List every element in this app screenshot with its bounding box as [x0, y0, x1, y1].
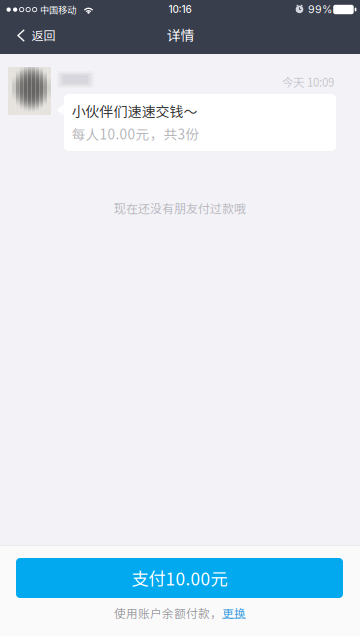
staticText: 现在还没有朋友付过款哦: [114, 199, 246, 217]
staticText: 更换: [222, 605, 246, 621]
staticText: 返回: [31, 26, 55, 44]
staticText: 今天 10:09: [282, 73, 334, 90]
staticText: 使用账户余额付款，: [114, 605, 222, 621]
button[interactable]: 返回: [10, 20, 78, 54]
staticText: 详情: [166, 24, 194, 45]
staticText: 每人10.00元，共3份: [71, 124, 199, 143]
staticText: 中国移动: [40, 3, 76, 16]
staticText: 小伙伴们速速交钱～: [71, 101, 197, 121]
staticText: 99%: [308, 3, 332, 16]
button[interactable]: 支付10.00元: [16, 558, 343, 598]
staticText: 支付10.00元: [131, 565, 227, 591]
button[interactable]: 使用账户余额付款，: [110, 603, 250, 623]
staticText: 10:16: [168, 3, 191, 15]
